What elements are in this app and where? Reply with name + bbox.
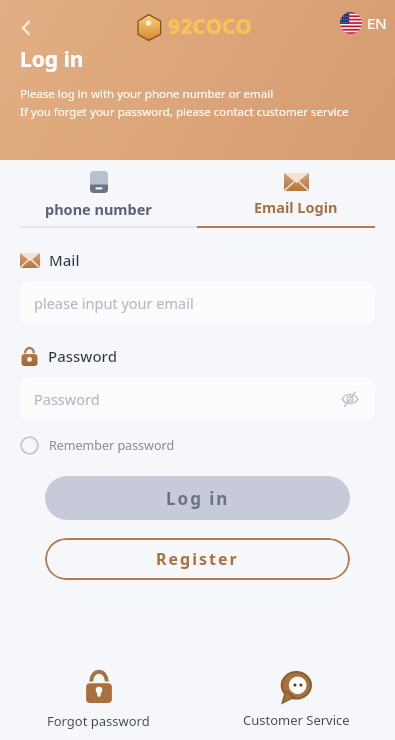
staticText: phone number <box>45 199 152 219</box>
staticText: Please log in with your phone number or … <box>20 86 274 102</box>
staticText: Log in <box>20 45 84 74</box>
staticText: If you forget your password, please cont… <box>20 104 349 120</box>
staticText: Forgot password <box>47 712 150 730</box>
button[interactable]: Forgot password <box>0 669 197 730</box>
staticText: Password <box>48 346 117 366</box>
staticText: Email Login <box>254 197 338 217</box>
button[interactable]: Email Login <box>197 164 395 226</box>
button[interactable]: Remember password <box>20 436 175 455</box>
staticText: Remember password <box>49 437 175 454</box>
button[interactable]: Customer Service <box>197 670 395 729</box>
button[interactable]: Password <box>20 378 375 420</box>
button[interactable]: Back <box>8 10 44 46</box>
button[interactable]: phone number <box>0 164 197 226</box>
button[interactable]: Show password <box>337 386 363 412</box>
button[interactable]: please input your email <box>20 282 375 324</box>
button[interactable]: Register <box>45 538 350 580</box>
staticText: EN <box>367 13 387 33</box>
button[interactable]: EN <box>340 12 387 34</box>
staticText: please input your email <box>34 293 194 313</box>
staticText: Customer Service <box>243 711 350 729</box>
staticText: 92COCO <box>168 12 252 41</box>
staticText: Log in <box>166 487 230 510</box>
button[interactable]: Log in <box>45 476 350 520</box>
staticText: Password <box>34 389 100 409</box>
staticText: Mail <box>49 250 80 270</box>
staticText: Register <box>156 548 239 570</box>
